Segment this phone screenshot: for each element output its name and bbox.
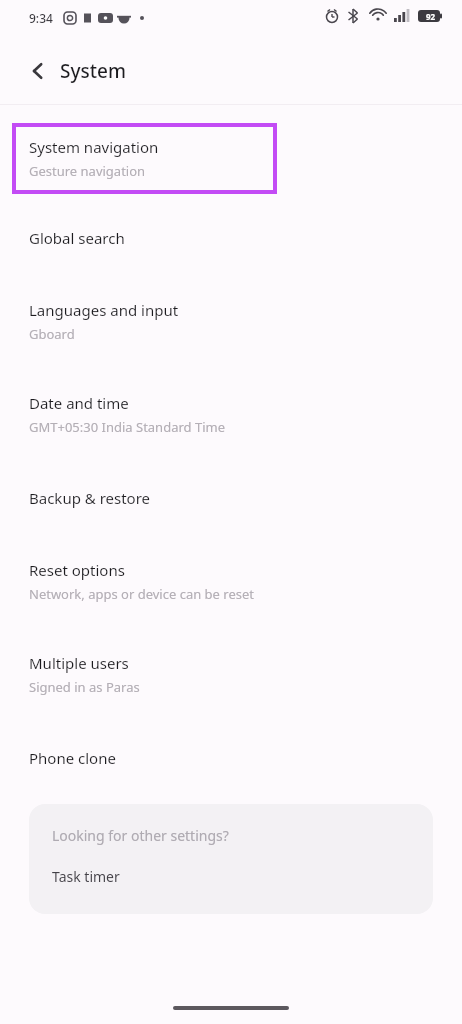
staticText: Gesture navigation bbox=[29, 162, 146, 180]
button[interactable]: Backup & restore bbox=[0, 472, 462, 524]
staticText: GMT+05:30 India Standard Time bbox=[29, 418, 225, 436]
staticText: Phone clone bbox=[29, 748, 116, 768]
button[interactable]: System navigation bbox=[12, 123, 277, 194]
staticText: Signed in as Paras bbox=[29, 678, 140, 696]
staticText: 92 bbox=[426, 11, 436, 22]
button[interactable]: Multiple users bbox=[0, 639, 462, 710]
staticText: Multiple users bbox=[29, 653, 129, 673]
staticText: 9:34 bbox=[29, 10, 53, 26]
button[interactable]: Languages and input bbox=[0, 286, 462, 357]
button[interactable]: Task timer bbox=[29, 861, 433, 892]
button[interactable]: Back bbox=[18, 51, 58, 91]
button[interactable]: Date and time bbox=[0, 379, 462, 450]
staticText: System bbox=[60, 58, 126, 84]
staticText: Gboard bbox=[29, 325, 75, 343]
button[interactable]: Reset options bbox=[0, 546, 462, 617]
staticText: Task timer bbox=[52, 867, 120, 886]
staticText: Date and time bbox=[29, 393, 129, 413]
staticText: System navigation bbox=[29, 137, 159, 157]
button[interactable]: Phone clone bbox=[0, 732, 462, 784]
staticText: Reset options bbox=[29, 560, 125, 580]
staticText: Network, apps or device can be reset bbox=[29, 585, 254, 603]
staticText: Backup & restore bbox=[29, 488, 151, 508]
button[interactable]: Global search bbox=[0, 212, 462, 264]
staticText: Global search bbox=[29, 228, 125, 248]
staticText: Languages and input bbox=[29, 300, 179, 320]
staticText: Looking for other settings? bbox=[52, 826, 229, 845]
